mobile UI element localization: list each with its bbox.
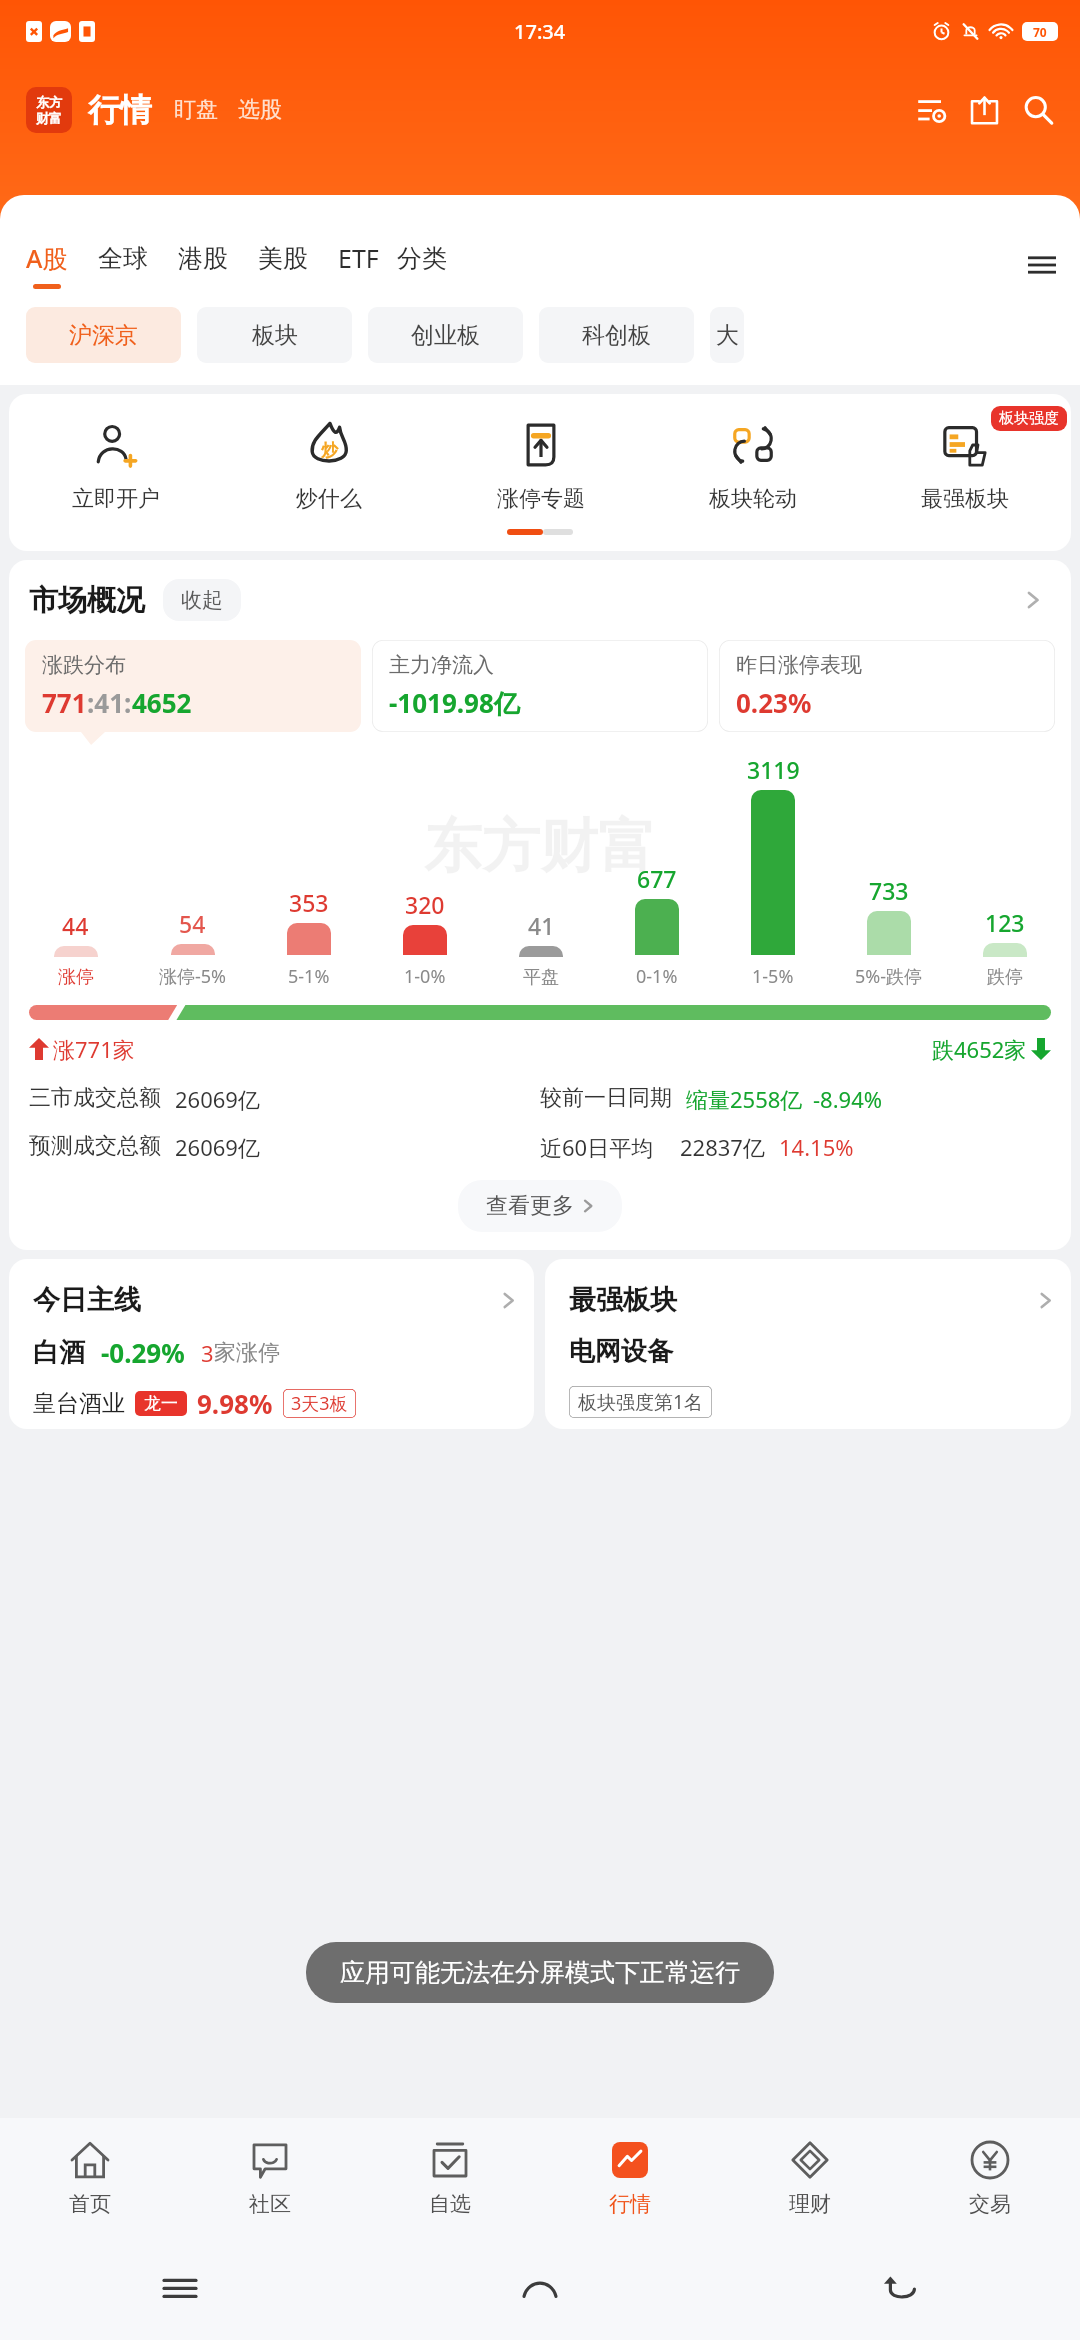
button[interactable]: 设置 [906,84,958,136]
staticText: -8.94% [813,1084,883,1114]
staticText: 54 [179,908,206,939]
staticText: 近60日平均 [540,1132,654,1162]
staticText: 最强板块 [921,485,1009,513]
staticText: -0.29% [101,1335,185,1370]
button[interactable]: 大 [710,307,744,363]
button[interactable]: 理财 [720,2138,900,2217]
staticText: 跌停 [987,966,1023,989]
staticText: 0-1% [636,964,678,989]
button[interactable]: 733 [831,875,947,995]
button[interactable]: 全部分类 [1014,237,1070,293]
button[interactable]: 港股 [178,223,228,307]
button[interactable]: 美股 [258,223,308,307]
button[interactable]: 查看更多 [458,1180,622,1232]
staticText: 市场概况 [29,582,145,619]
staticText: 炒 [321,440,338,461]
button[interactable]: 41 [483,910,599,995]
staticText: 板块强度第1名 [578,1389,703,1415]
staticText: 自选 [429,2191,471,2217]
staticText: 沪深京 [69,321,138,350]
staticText: 行情 [609,2191,651,2217]
staticText: 5-1% [288,964,330,989]
staticText: 首页 [69,2191,111,2217]
staticText: 0.23% [736,685,812,720]
button[interactable]: 677 [599,863,715,995]
button[interactable]: 44 [17,910,134,995]
staticText: 677 [637,863,677,894]
staticText: 3119 [747,754,800,785]
button[interactable]: 炒 [222,418,435,513]
staticText: 涨771家 [53,1034,135,1064]
staticText: 电网设备 [569,1335,673,1368]
button[interactable]: 社区 [180,2138,360,2217]
staticText: 港股 [178,243,228,274]
button[interactable]: 主力净流入 [372,640,708,732]
button[interactable]: 东方财富 [26,87,72,133]
button[interactable]: 科创板 [539,307,694,363]
staticText: 东方财富 [424,810,656,883]
staticText: 4652 [132,685,192,720]
button[interactable]: 创业板 [368,307,523,363]
button[interactable]: A股 [26,223,68,307]
button[interactable]: Recent apps [148,2256,212,2320]
button[interactable]: 选股 [238,96,282,124]
button[interactable]: 盯盘 [174,96,218,124]
button[interactable]: 收起 [163,579,241,621]
button[interactable]: 分享 [958,84,1010,136]
staticText: 3天3板 [291,1391,348,1416]
button[interactable]: 最强板块 [859,418,1071,513]
staticText: 123 [985,907,1025,938]
button[interactable]: 353 [251,887,367,995]
staticText: 大 [716,321,739,350]
button[interactable]: Home [508,2256,572,2320]
staticText: 较前一日同期 [540,1084,672,1112]
staticText: 1-0% [404,964,446,989]
button[interactable]: ETF [338,223,379,307]
staticText: 353 [289,887,329,918]
button[interactable]: 320 [367,889,483,995]
staticText: 最强板块 [569,1283,677,1317]
staticText: 昨日涨停表现 [736,652,862,678]
button[interactable]: 昨日涨停表现 [719,640,1055,732]
staticText: 立即开户 [72,485,160,513]
button[interactable]: 行情 [540,2138,720,2217]
staticText: 跌4652家 [932,1034,1027,1064]
button[interactable]: 最强板块 [545,1259,1071,1429]
staticText: ETF [338,241,379,275]
staticText: 44 [62,910,89,941]
staticText: 22837亿 [680,1132,765,1162]
staticText: A股 [26,241,68,275]
staticText: 三市成交总额 [29,1084,161,1112]
staticText: 主力净流入 [389,652,494,678]
button[interactable]: 板块 [197,307,352,363]
staticText: 白酒 [33,1336,85,1369]
button[interactable]: 自选 [360,2138,540,2217]
staticText: 东方 [36,94,62,110]
button[interactable]: 3119 [715,754,831,995]
staticText: 3 [201,1338,214,1368]
staticText: 科创板 [582,321,651,350]
staticText: 全球 [98,243,148,274]
button[interactable]: 板块轮动 [647,418,859,513]
staticText: 320 [405,889,445,920]
button[interactable]: 分类 [397,223,447,307]
button[interactable]: 立即开户 [9,418,222,513]
button[interactable]: 全球 [98,223,148,307]
button[interactable]: 123 [947,907,1063,995]
button[interactable]: 搜索 [1010,82,1066,138]
staticText: 炒什么 [296,485,362,513]
button[interactable]: 首页 [0,2138,180,2217]
staticText: 分类 [397,243,447,274]
staticText: 771 [42,685,87,720]
button[interactable]: 涨停专题 [435,418,647,513]
button[interactable]: 交易 [900,2138,1080,2217]
button[interactable]: 54 [134,908,251,995]
staticText: 涨停 [58,966,94,989]
staticText: :41: [87,685,132,720]
button[interactable]: 行情 [88,90,152,130]
button[interactable]: 沪深京 [26,307,181,363]
button[interactable]: 查看市场概况 [1015,582,1051,618]
button[interactable]: 今日主线 [9,1259,534,1429]
button[interactable]: Back [868,2256,932,2320]
button[interactable]: 涨跌分布 [25,640,361,732]
